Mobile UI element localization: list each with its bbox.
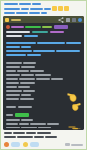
button[interactable] (11, 142, 20, 147)
button[interactable]: Like reaction (23, 142, 28, 147)
button[interactable] (30, 142, 39, 147)
button[interactable] (15, 113, 29, 117)
button[interactable]: Share (3, 16, 84, 23)
button[interactable]: Fire reaction (4, 142, 9, 147)
button[interactable]: Share (3, 16, 84, 130)
button[interactable] (1, 1, 86, 16)
other: Share (58, 17, 64, 23)
